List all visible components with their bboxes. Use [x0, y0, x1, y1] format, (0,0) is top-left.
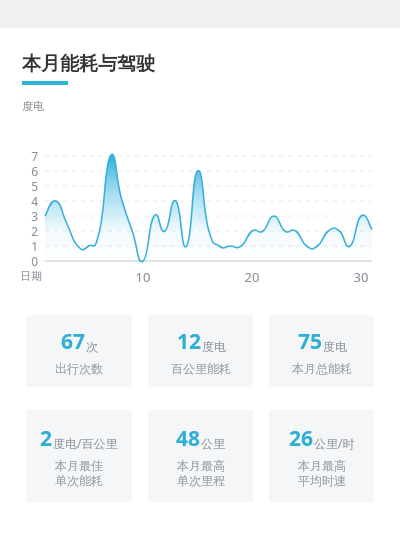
staticText: 0	[24, 253, 38, 269]
staticText: 单次能耗	[55, 473, 103, 488]
staticText: 本月能耗与驾驶	[22, 52, 155, 76]
staticText: 4	[24, 193, 38, 209]
staticText: 75	[298, 327, 323, 356]
staticText: 日期	[20, 269, 42, 283]
staticText: 26	[289, 424, 314, 453]
staticText: 1	[24, 238, 38, 254]
staticText: 30	[348, 268, 374, 286]
button[interactable]: 75	[269, 315, 374, 387]
staticText: 67	[61, 327, 86, 356]
staticText: 出行次数	[55, 361, 103, 376]
button[interactable]: 12	[148, 315, 253, 387]
staticText: 5	[24, 178, 38, 194]
staticText: 12	[177, 327, 202, 356]
button[interactable]: 67	[26, 315, 132, 387]
staticText: 度电/百公里	[53, 435, 118, 451]
button[interactable]: 48	[148, 410, 253, 502]
staticText: 度电	[22, 99, 44, 113]
staticText: 本月最佳	[55, 458, 103, 473]
staticText: 本月最高	[177, 458, 225, 473]
staticText: 20	[239, 268, 265, 286]
staticText: 2	[24, 223, 38, 239]
staticText: 次	[86, 339, 98, 354]
staticText: 7	[24, 148, 38, 164]
staticText: 48	[176, 424, 201, 453]
staticText: 单次里程	[177, 473, 225, 488]
staticText: 3	[24, 208, 38, 224]
staticText: 平均时速	[298, 473, 346, 488]
staticText: 公里	[201, 436, 225, 451]
staticText: 公里/时	[314, 435, 355, 451]
staticText: 百公里能耗	[171, 361, 231, 376]
staticText: 本月最高	[298, 458, 346, 473]
button[interactable]: 26	[269, 410, 374, 502]
button[interactable]: 2	[26, 410, 132, 502]
staticText: 度电	[202, 339, 226, 354]
staticText: 2	[40, 424, 53, 453]
staticText: 10	[130, 268, 156, 286]
staticText: 本月总能耗	[292, 361, 352, 376]
staticText: 6	[24, 163, 38, 179]
staticText: 度电	[323, 339, 347, 354]
